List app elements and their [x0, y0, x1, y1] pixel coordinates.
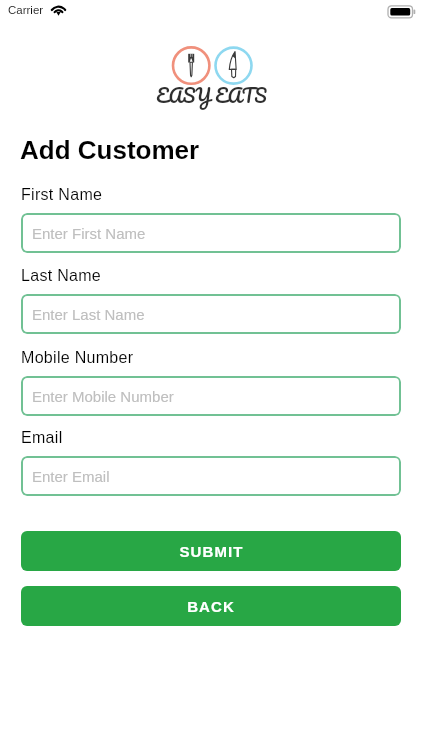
staticText: Enter Last Name: [32, 306, 145, 323]
staticText: Mobile Number: [21, 349, 134, 367]
button[interactable]: Enter First Name: [21, 213, 401, 253]
button[interactable]: Enter Mobile Number: [21, 376, 401, 416]
staticText: Carrier: [8, 4, 44, 17]
staticText: EASY EATS: [156, 80, 267, 112]
button[interactable]: Enter Email: [21, 456, 401, 496]
staticText: Add Customer: [20, 135, 200, 164]
staticText: BACK: [187, 598, 235, 615]
staticText: SUBMIT: [179, 543, 244, 560]
staticText: Enter Mobile Number: [32, 388, 174, 405]
staticText: Last Name: [21, 267, 102, 285]
button[interactable]: BACK: [21, 586, 401, 626]
staticText: Email: [21, 429, 63, 447]
staticText: Enter First Name: [32, 225, 146, 242]
staticText: First Name: [21, 186, 103, 204]
button[interactable]: Enter Last Name: [21, 294, 401, 334]
button[interactable]: SUBMIT: [21, 531, 401, 571]
staticText: Enter Email: [32, 468, 110, 485]
